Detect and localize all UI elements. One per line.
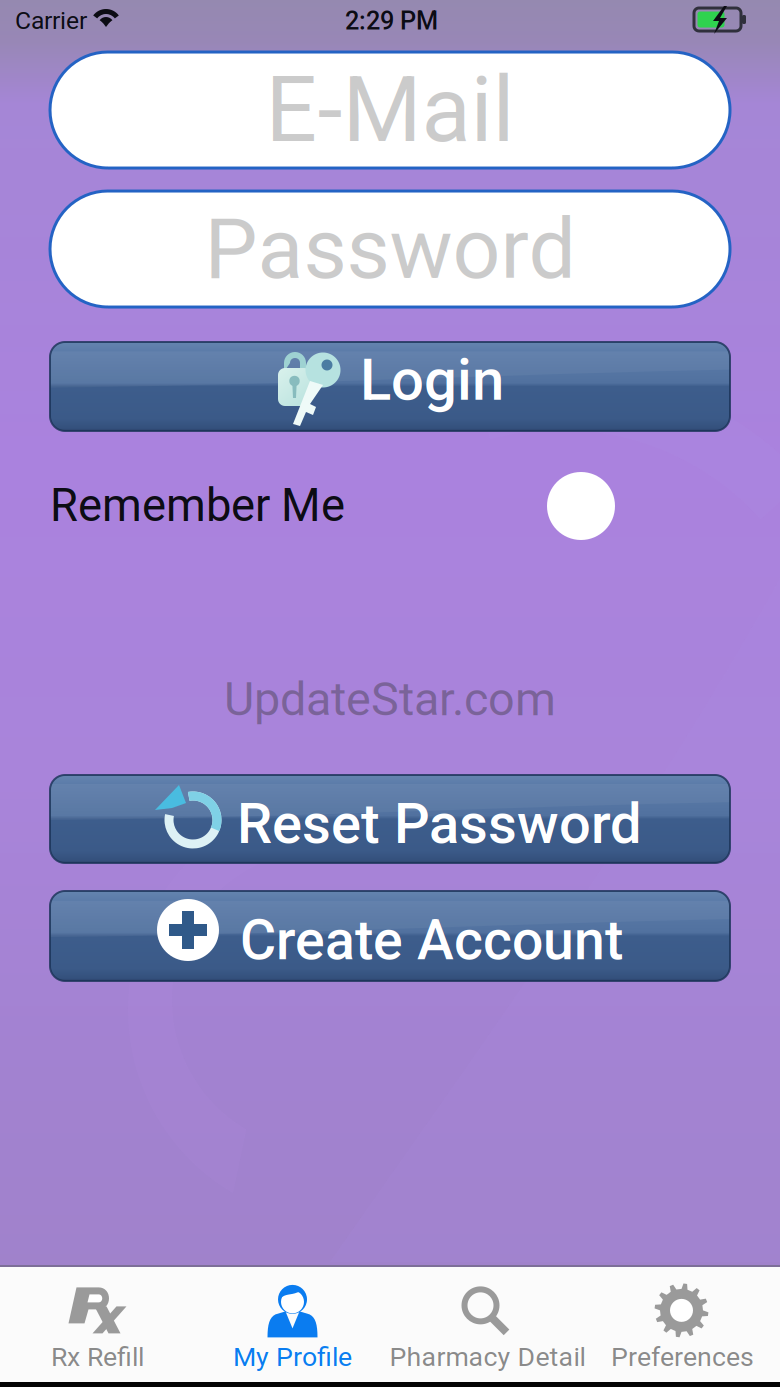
button[interactable]: Password xyxy=(50,191,730,307)
staticText: Carrier xyxy=(15,6,87,35)
staticText: UpdateStar.com xyxy=(224,672,556,727)
button[interactable]: Preferences xyxy=(585,1269,780,1387)
button[interactable]: Rx Refill xyxy=(0,1269,195,1387)
button[interactable]: Remember Me toggle xyxy=(547,472,615,540)
button[interactable]: Pharmacy Detail xyxy=(390,1269,585,1387)
staticText: My Profile xyxy=(233,1341,352,1373)
button[interactable]: My Profile xyxy=(195,1269,390,1387)
staticText: 2:29 PM xyxy=(345,6,438,36)
staticText: E-Mail xyxy=(265,57,514,163)
staticText: Pharmacy Detail xyxy=(389,1341,585,1373)
staticText: Password xyxy=(204,200,575,298)
staticText: Rx Refill xyxy=(51,1341,144,1373)
button[interactable]: Reset Password xyxy=(50,775,730,863)
button[interactable]: Login xyxy=(50,342,730,431)
staticText: Preferences xyxy=(611,1341,754,1373)
button[interactable]: E-Mail xyxy=(50,52,730,168)
staticText: Create Account xyxy=(240,908,623,973)
staticText: Remember Me xyxy=(50,479,345,532)
button[interactable]: Create Account xyxy=(50,891,730,981)
staticText: Reset Password xyxy=(237,791,642,857)
staticText: Login xyxy=(360,346,504,414)
